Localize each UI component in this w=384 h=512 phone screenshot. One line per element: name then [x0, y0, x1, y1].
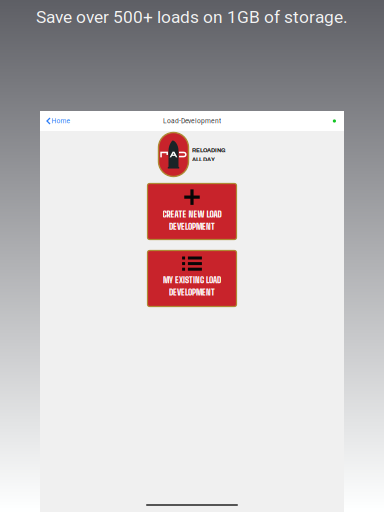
button[interactable]: Connection status	[328, 114, 341, 128]
button[interactable]: Home	[43, 112, 74, 130]
button[interactable]: CREATE NEW LOAD	[147, 183, 236, 239]
staticText: Home	[51, 117, 70, 125]
staticText: Load-Development	[163, 117, 221, 125]
staticText: DEVELOPMENT	[169, 221, 215, 232]
staticText: ALL DAY	[192, 156, 215, 163]
button[interactable]: MY EXISTING LOAD	[147, 250, 236, 306]
staticText: MY EXISTING LOAD	[163, 275, 221, 285]
staticText: RELOADING	[192, 147, 226, 153]
staticText: CREATE NEW LOAD	[162, 209, 221, 219]
staticText: Save over 500+ loads on 1GB of storage.	[36, 7, 348, 27]
staticText: DEVELOPMENT	[169, 287, 215, 297]
